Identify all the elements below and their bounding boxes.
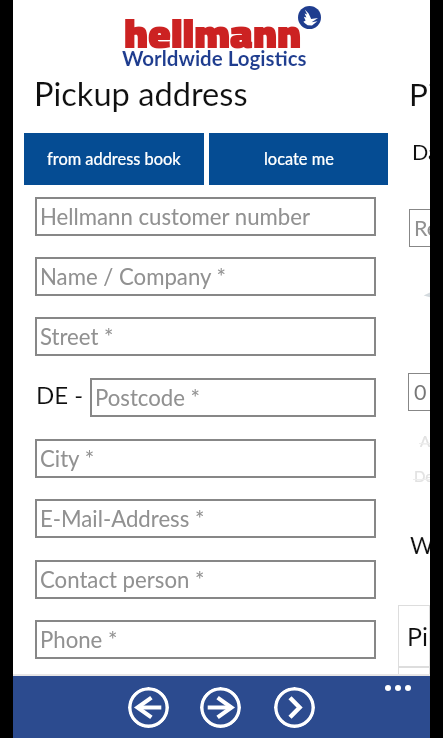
button[interactable]: from address book [24,133,204,185]
staticText: E-Mail-Address * [40,505,205,532]
staticText: Add [420,432,430,450]
button[interactable]: Postcode * [90,378,376,417]
staticText: Contact person * [40,566,205,593]
staticText: Hellmann customer number [40,203,311,230]
button[interactable]: E-Mail-Address * [35,499,376,538]
staticText: Delete [414,467,430,485]
staticText: Date [412,139,430,165]
button[interactable]: Back [128,687,169,728]
button[interactable]: locate me [209,133,388,185]
button[interactable]: Name / Company * [35,257,376,296]
staticText: hellmann [124,1,301,64]
staticText: Street * [40,323,114,350]
staticText: from address book [47,149,181,169]
staticText: Pickup date [409,75,430,113]
button[interactable]: Forward [200,687,241,728]
staticText: Requested [414,215,430,241]
staticText: locate me [264,149,334,169]
staticText: Name / Company * [40,263,226,290]
staticText: Phone * [40,626,118,653]
button[interactable]: Hellmann customer number [35,197,376,236]
button[interactable]: City * [35,439,376,478]
staticText: Pickup address [34,74,248,113]
button[interactable]: More options [383,683,413,693]
staticText: Pickup [407,621,430,651]
button[interactable]: Street * [35,317,376,356]
button[interactable]: Contact person * [35,560,376,599]
staticText: City * [40,445,95,472]
staticText: Worldwide Logistics [122,46,307,71]
staticText: 0 [414,379,427,405]
button[interactable]: Phone * [35,620,376,659]
staticText: Weight [410,531,430,559]
button[interactable]: Next [274,687,315,728]
staticText: Postcode * [95,384,201,411]
staticText: DE - [36,380,84,409]
